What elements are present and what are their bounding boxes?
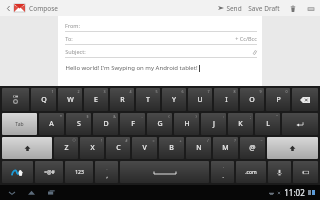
staticText: E xyxy=(94,95,98,105)
button[interactable]: U xyxy=(188,88,212,111)
staticText: I xyxy=(225,95,228,105)
staticText: A xyxy=(49,119,54,129)
button[interactable]: .com xyxy=(236,161,266,183)
button[interactable]: X xyxy=(80,137,104,159)
button[interactable]: Z xyxy=(54,137,78,159)
staticText: Q xyxy=(41,95,47,105)
button[interactable]: I xyxy=(214,88,238,111)
button[interactable]: Space xyxy=(120,161,209,183)
button[interactable]: Swype xyxy=(2,161,33,183)
staticText: ; xyxy=(250,114,251,119)
staticText: . xyxy=(222,173,224,179)
button[interactable]: M xyxy=(213,137,238,159)
staticText: W xyxy=(67,95,74,105)
staticText: Send xyxy=(226,4,242,13)
staticText: 8 xyxy=(233,89,236,94)
staticText: ! xyxy=(101,138,102,143)
staticText: From: xyxy=(65,22,80,29)
button[interactable]: @ xyxy=(240,137,265,159)
button[interactable]: Hide keyboard xyxy=(5,186,18,199)
staticText: T xyxy=(146,95,150,105)
staticText: , xyxy=(106,173,108,179)
button[interactable]: 123 xyxy=(65,161,93,183)
button[interactable]: Voice input xyxy=(268,161,291,183)
button[interactable]: Discard xyxy=(286,2,299,15)
button[interactable]: Tab xyxy=(2,113,37,135)
button[interactable]: E xyxy=(84,88,108,111)
staticText: Y xyxy=(172,95,176,105)
button[interactable]: T xyxy=(136,88,160,111)
staticText: - xyxy=(106,166,108,172)
button[interactable]: Voice xyxy=(2,88,29,111)
button[interactable]: From: xyxy=(65,22,257,32)
staticText: 7 xyxy=(207,89,210,94)
staticText: 0 xyxy=(285,89,288,94)
button[interactable]: Save Draft xyxy=(248,0,280,16)
staticText: # xyxy=(125,138,128,143)
button[interactable]: Home xyxy=(25,186,38,199)
staticText: Subject: xyxy=(65,48,86,55)
staticText: L xyxy=(266,119,270,129)
button[interactable]: P xyxy=(266,88,290,111)
button[interactable]: Send xyxy=(218,0,242,16)
button[interactable]: V xyxy=(132,137,157,159)
button[interactable]: More options xyxy=(304,2,317,15)
staticText: 4 xyxy=(129,89,132,94)
staticText: - xyxy=(141,114,143,119)
button[interactable]: Q xyxy=(31,88,56,111)
button[interactable]: H xyxy=(174,113,199,135)
button[interactable]: N xyxy=(186,137,211,159)
button[interactable]: A xyxy=(39,113,64,135)
button[interactable]: Recent apps xyxy=(45,186,58,199)
staticText: C xyxy=(116,143,121,153)
staticText: " xyxy=(276,114,278,119)
staticText: J xyxy=(213,119,215,129)
staticText: Tab xyxy=(15,121,24,128)
button[interactable]: =@# xyxy=(35,161,63,183)
staticText: M xyxy=(222,143,229,153)
staticText: $ xyxy=(86,114,89,119)
button[interactable]: G xyxy=(147,113,172,135)
staticText: Compose xyxy=(29,4,58,13)
button[interactable]: F xyxy=(120,113,145,135)
button[interactable]: Shift xyxy=(2,137,52,159)
button[interactable]: R xyxy=(110,88,134,111)
button[interactable]: L xyxy=(255,113,280,135)
button[interactable]: D xyxy=(93,113,118,135)
staticText: H xyxy=(184,119,190,129)
staticText: 3 xyxy=(103,89,106,94)
button[interactable]: Comma xyxy=(95,161,118,183)
staticText: / xyxy=(207,138,209,143)
button[interactable]: Subject: xyxy=(65,48,257,58)
staticText: : xyxy=(223,114,224,119)
button[interactable]: Y xyxy=(162,88,186,111)
button[interactable]: S xyxy=(66,113,91,135)
button[interactable]: K xyxy=(228,113,253,135)
staticText: 1 xyxy=(51,89,54,94)
staticText: 6 xyxy=(181,89,184,94)
button[interactable]: Period xyxy=(211,161,234,183)
staticText: B xyxy=(169,143,174,153)
button[interactable]: Shift xyxy=(267,137,318,159)
staticText: 2 xyxy=(77,89,80,94)
button[interactable]: Up xyxy=(3,3,13,13)
staticText: V xyxy=(142,143,147,153)
button[interactable]: J xyxy=(201,113,226,135)
staticText: ) xyxy=(195,114,197,119)
button[interactable]: B xyxy=(159,137,184,159)
button[interactable]: C xyxy=(106,137,130,159)
staticText: U xyxy=(197,95,203,105)
staticText: O xyxy=(249,95,255,105)
staticText: =@# xyxy=(44,169,55,176)
button[interactable]: W xyxy=(58,88,82,111)
staticText: X xyxy=(90,143,95,153)
button[interactable]: Enter xyxy=(282,113,318,135)
button[interactable]: Backspace xyxy=(292,88,318,111)
button[interactable]: Keyboard settings xyxy=(293,161,318,183)
staticText: = xyxy=(152,138,155,143)
staticText: N xyxy=(196,143,202,153)
staticText: F xyxy=(131,119,135,129)
staticText: 9 xyxy=(259,89,262,94)
button[interactable]: O xyxy=(240,88,264,111)
button[interactable]: To: xyxy=(65,35,257,45)
